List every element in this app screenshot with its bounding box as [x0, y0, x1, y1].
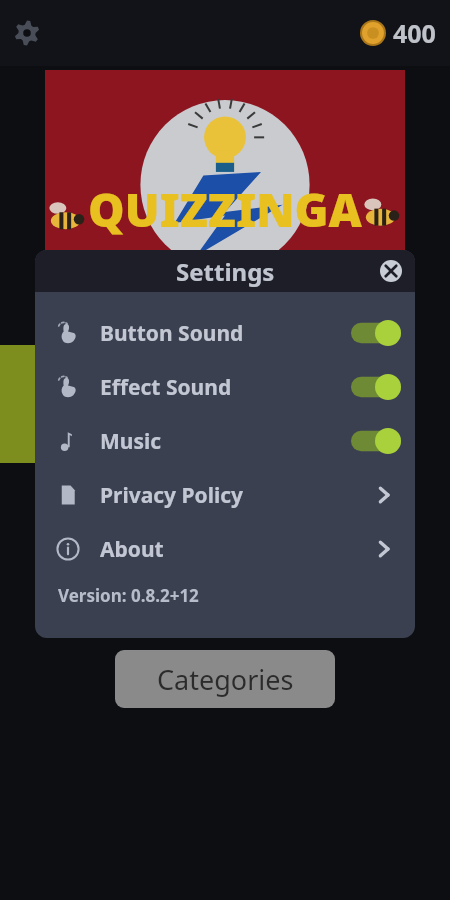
staticText: Music: [100, 427, 162, 456]
button[interactable]: Privacy Policy: [35, 468, 415, 522]
button[interactable]: Button Sound: [35, 306, 415, 360]
staticText: Categories: [157, 661, 294, 698]
button[interactable]: Effect Sound toggle: [351, 374, 401, 400]
button[interactable]: Effect Sound: [35, 360, 415, 414]
staticText: Button Sound: [100, 319, 244, 348]
button[interactable]: Close: [375, 255, 407, 287]
button[interactable]: Open Privacy Policy: [367, 478, 401, 512]
button[interactable]: 400: [360, 16, 436, 50]
button[interactable]: Settings: [10, 16, 44, 50]
staticText: QUIZZINGA: [88, 178, 362, 241]
button[interactable]: [0, 345, 45, 463]
button[interactable]: Categories: [115, 650, 335, 708]
staticText: 400: [393, 16, 436, 50]
button[interactable]: Button Sound toggle: [351, 320, 401, 346]
staticText: Effect Sound: [100, 373, 232, 402]
staticText: Privacy Policy: [100, 481, 244, 510]
button[interactable]: Open About: [367, 532, 401, 566]
staticText: About: [100, 535, 164, 564]
button[interactable]: Music toggle: [351, 428, 401, 454]
button[interactable]: Music: [35, 414, 415, 468]
staticText: Version: 0.8.2+12: [58, 584, 199, 607]
staticText: Settings: [176, 255, 275, 288]
button[interactable]: About: [35, 522, 415, 576]
